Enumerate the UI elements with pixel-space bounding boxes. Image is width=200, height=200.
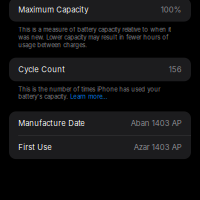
- staticText: This is the number of times iPhone has u…: [18, 86, 160, 93]
- staticText: Maximum Capacity: [18, 5, 88, 14]
- staticText: Aban 1403 AP: [131, 118, 182, 128]
- staticText: Azar 1403 AP: [134, 143, 182, 152]
- staticText: 156: [169, 65, 182, 74]
- button[interactable]: Maximum Capacity: [9, 0, 191, 22]
- staticText: battery's capacity.: [18, 93, 70, 100]
- button[interactable]: Learn more…: [70, 93, 107, 100]
- button[interactable]: Manufacture Date: [9, 111, 191, 135]
- button[interactable]: First Use: [9, 135, 191, 159]
- staticText: Cycle Count: [18, 65, 65, 74]
- staticText: Learn more…: [70, 93, 107, 100]
- staticText: This is a measure of battery capacity re…: [18, 26, 171, 49]
- staticText: Manufacture Date: [18, 118, 85, 128]
- staticText: First Use: [18, 143, 52, 152]
- button[interactable]: Cycle Count: [9, 58, 191, 81]
- staticText: 100%: [161, 5, 182, 14]
